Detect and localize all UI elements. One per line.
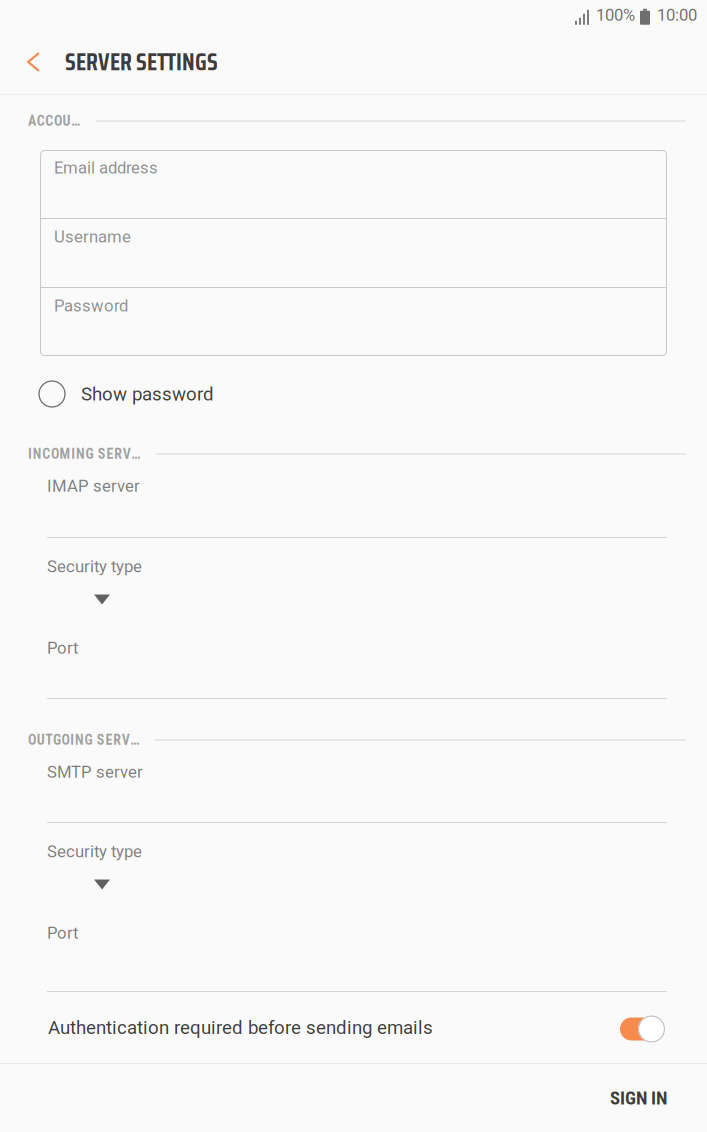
staticText: SIGN IN: [610, 1087, 667, 1109]
button[interactable]: Password: [40, 288, 667, 356]
button[interactable]: IMAP server: [0, 462, 707, 538]
button[interactable]: Security type: [0, 538, 707, 612]
staticText: INCOMING SERVER: [28, 446, 146, 462]
staticText: Email address: [54, 158, 158, 177]
staticText: IMAP server: [47, 476, 140, 496]
staticText: SERVER SETTINGS: [65, 43, 218, 81]
staticText: Port: [47, 923, 78, 943]
staticText: 10:00: [657, 5, 697, 25]
staticText: Authentication required before sending e…: [48, 1017, 433, 1038]
button[interactable]: Username: [40, 219, 667, 287]
staticText: ACCOUNT: [28, 113, 87, 129]
button[interactable]: Authentication required before sending e…: [0, 992, 707, 1063]
staticText: Show password: [81, 383, 214, 405]
staticText: OUTGOING SERVER: [28, 732, 145, 748]
button[interactable]: Back: [0, 30, 65, 94]
staticText: Security type: [47, 557, 142, 576]
button[interactable]: Show password: [0, 368, 707, 420]
button[interactable]: SMTP server: [0, 748, 707, 823]
staticText: SMTP server: [47, 762, 143, 782]
button[interactable]: Email address: [40, 150, 667, 218]
button[interactable]: SIGN IN: [0, 1064, 707, 1132]
button[interactable]: Port: [0, 897, 707, 992]
staticText: Username: [54, 227, 131, 246]
staticText: Password: [54, 296, 128, 315]
button[interactable]: Port: [0, 612, 707, 699]
staticText: Security type: [47, 842, 142, 861]
staticText: Port: [47, 638, 78, 658]
button[interactable]: Security type: [0, 823, 707, 897]
staticText: 100%: [596, 5, 635, 25]
